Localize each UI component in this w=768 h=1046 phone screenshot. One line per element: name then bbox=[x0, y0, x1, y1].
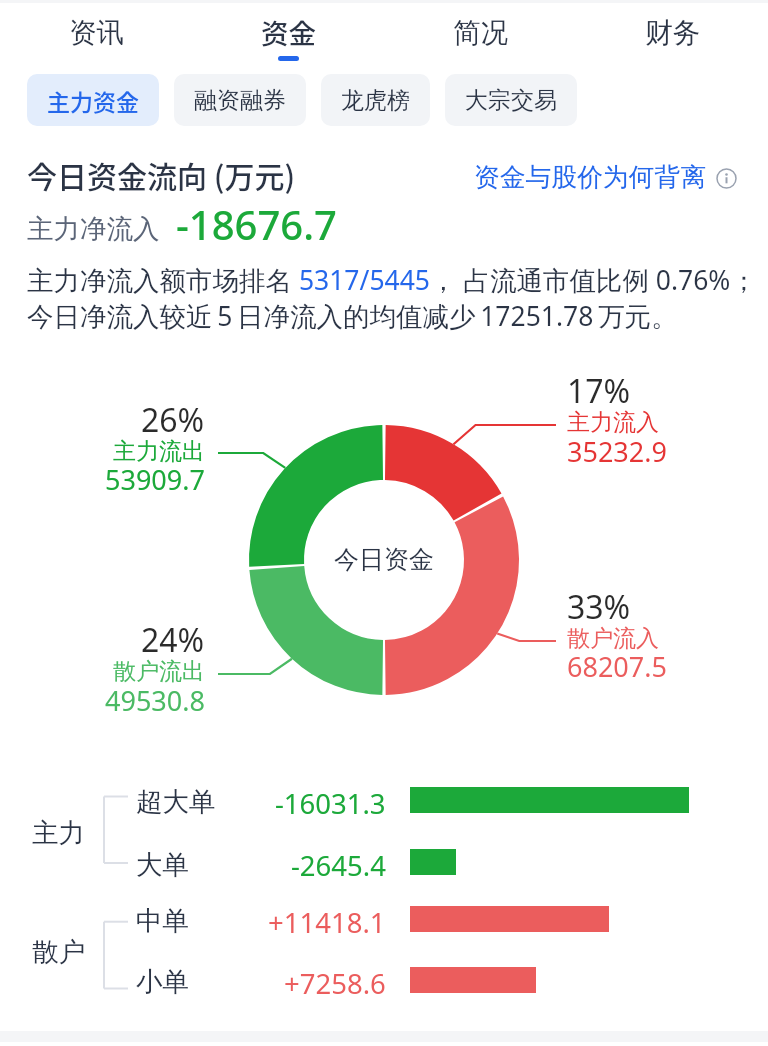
staticText: 资金与股价为何背离 bbox=[474, 161, 707, 194]
staticText: 主力净流入额市场排名 5317/5445， 占流通市值比例 0.76%； bbox=[27, 262, 757, 298]
staticText: 资讯 bbox=[69, 16, 124, 51]
staticText: -18676.7 bbox=[176, 197, 337, 251]
staticText: 35232.9 bbox=[567, 433, 667, 470]
staticText: 主力资金 bbox=[47, 84, 139, 117]
button[interactable]: 资金 bbox=[192, 5, 384, 63]
staticText: 今日净流入较近 5 日净流入的均值减少 17251.78 万元。 bbox=[27, 298, 678, 334]
staticText: 财务 bbox=[645, 16, 700, 51]
staticText: -16031.3 bbox=[275, 785, 386, 822]
button[interactable]: 龙虎榜 bbox=[321, 74, 430, 126]
staticText: 今日资金 bbox=[334, 544, 434, 575]
staticText: -2645.4 bbox=[291, 847, 386, 884]
staticText: 33% bbox=[567, 585, 631, 629]
staticText: +11418.1 bbox=[268, 904, 386, 941]
other: 说明 bbox=[716, 168, 737, 189]
staticText: 主力 bbox=[32, 816, 85, 849]
button[interactable]: 主力资金 bbox=[27, 74, 159, 126]
staticText: 龙虎榜 bbox=[341, 86, 410, 115]
button[interactable]: 资讯 bbox=[0, 5, 192, 63]
staticText: 主力净流入 bbox=[27, 212, 160, 245]
staticText: 主力流出 bbox=[113, 437, 205, 466]
staticText: 主力流入 bbox=[567, 408, 659, 437]
staticText: 超大单 bbox=[136, 785, 216, 818]
staticText: 中单 bbox=[136, 904, 189, 937]
button[interactable]: 财务 bbox=[576, 5, 768, 63]
staticText: 资金 bbox=[261, 12, 316, 52]
staticText: 26% bbox=[141, 398, 205, 442]
staticText: 49530.8 bbox=[105, 682, 205, 719]
staticText: 散户流入 bbox=[567, 624, 659, 653]
staticText: 小单 bbox=[136, 965, 189, 998]
staticText: 大单 bbox=[136, 848, 189, 881]
button[interactable]: 资金与股价为何背离 bbox=[474, 161, 737, 194]
staticText: 融资融券 bbox=[194, 86, 286, 115]
staticText: 24% bbox=[141, 618, 205, 662]
button[interactable]: 融资融券 bbox=[174, 74, 306, 126]
staticText: 大宗交易 bbox=[465, 86, 557, 115]
staticText: +7258.6 bbox=[284, 965, 386, 1002]
staticText: 今日资金流向 (万元) bbox=[27, 153, 296, 196]
button[interactable]: 大宗交易 bbox=[445, 74, 577, 126]
staticText: 散户流出 bbox=[113, 657, 205, 686]
staticText: 53909.7 bbox=[105, 461, 205, 498]
button[interactable]: 简况 bbox=[384, 5, 576, 63]
staticText: 68207.5 bbox=[567, 648, 667, 685]
staticText: 散户 bbox=[32, 935, 85, 968]
staticText: 简况 bbox=[453, 16, 508, 51]
staticText: 17% bbox=[567, 369, 631, 413]
